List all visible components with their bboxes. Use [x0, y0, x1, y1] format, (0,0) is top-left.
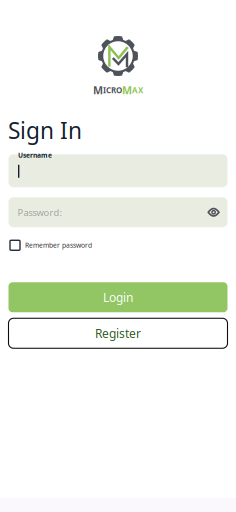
staticText: Remember password [25, 241, 92, 250]
button[interactable]: Username [8, 154, 227, 187]
staticText: M [93, 83, 103, 97]
staticText: Register [95, 325, 141, 341]
staticText: M [122, 83, 132, 97]
button[interactable]: Register [8, 318, 227, 348]
staticText: Login [103, 289, 133, 305]
staticText: AX [132, 85, 143, 95]
staticText: ICRO [103, 85, 122, 95]
button[interactable]: Remember password [0, 239, 92, 251]
staticText: Username [18, 151, 52, 160]
staticText: Sign In [8, 115, 82, 145]
staticText: Password: [17, 206, 62, 218]
button[interactable]: Login [8, 282, 227, 312]
button[interactable]: Password: [8, 197, 227, 227]
